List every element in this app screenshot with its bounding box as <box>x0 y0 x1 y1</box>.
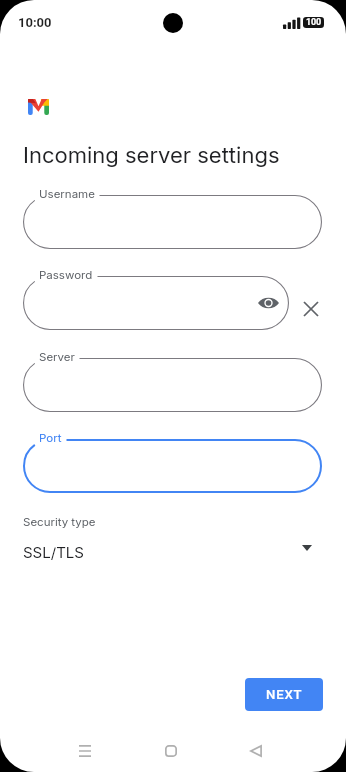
button[interactable]: Clear <box>297 295 325 323</box>
button[interactable] <box>23 358 322 412</box>
staticText: Server <box>39 350 75 364</box>
button[interactable]: Security type <box>0 512 346 568</box>
staticText: Password <box>39 268 93 282</box>
button[interactable]: Back <box>232 733 280 769</box>
staticText: Incoming server settings <box>23 142 280 169</box>
staticText: Username <box>39 187 95 201</box>
button[interactable]: NEXT <box>245 678 323 711</box>
button[interactable] <box>23 439 322 493</box>
staticText: 10:00 <box>18 15 52 30</box>
staticText: Security type <box>23 515 96 529</box>
staticText: NEXT <box>266 687 303 702</box>
button[interactable]: Recents <box>61 733 109 769</box>
button[interactable]: Home <box>147 733 195 769</box>
staticText: 100 <box>306 17 321 28</box>
button[interactable]: Show password <box>23 276 289 330</box>
button[interactable]: Show password <box>252 287 284 319</box>
button[interactable] <box>23 195 322 249</box>
staticText: Port <box>39 431 62 445</box>
staticText: SSL/TLS <box>23 543 84 561</box>
